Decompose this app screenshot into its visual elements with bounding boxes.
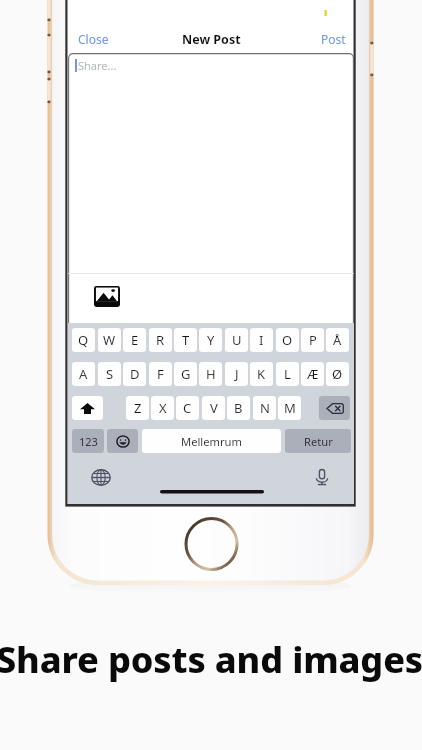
button[interactable]: Mellemrum <box>142 429 281 453</box>
staticText: N <box>260 399 270 417</box>
button[interactable]: R <box>149 328 172 352</box>
staticText: B <box>234 399 243 417</box>
button[interactable]: L <box>276 362 299 386</box>
button[interactable]: J <box>225 362 248 386</box>
staticText: U <box>232 331 242 349</box>
button[interactable]: Dictation <box>313 468 331 486</box>
button[interactable]: D <box>123 362 146 386</box>
button[interactable]: Share... <box>68 53 354 273</box>
button[interactable]: Retur <box>285 429 351 453</box>
button[interactable]: C <box>176 396 199 420</box>
staticText: Å <box>333 331 342 349</box>
button[interactable]: Emoji <box>107 429 138 453</box>
button[interactable]: Close <box>78 31 109 47</box>
staticText: Y <box>207 331 215 349</box>
button[interactable]: U <box>225 328 248 352</box>
staticText: D <box>130 365 140 383</box>
staticText: 123 <box>79 434 98 449</box>
button[interactable]: Switch keyboard <box>91 469 111 486</box>
button[interactable]: S <box>98 362 121 386</box>
staticText: G <box>181 365 191 383</box>
button[interactable]: Æ <box>301 362 324 386</box>
staticText: R <box>156 331 165 349</box>
staticText: Retur <box>304 434 333 449</box>
staticText: P <box>309 331 317 349</box>
button[interactable]: G <box>174 362 197 386</box>
button[interactable]: E <box>123 328 146 352</box>
button[interactable]: X <box>151 396 174 420</box>
button[interactable]: P <box>301 328 324 352</box>
button[interactable]: I <box>250 328 273 352</box>
button[interactable]: Y <box>199 328 222 352</box>
staticText: Q <box>78 331 89 349</box>
button[interactable]: F <box>149 362 172 386</box>
staticText: H <box>206 365 216 383</box>
staticText: O <box>282 331 293 349</box>
button[interactable]: O <box>276 328 299 352</box>
button[interactable]: N <box>253 396 276 420</box>
staticText: Ø <box>332 365 343 383</box>
staticText: K <box>257 365 266 383</box>
staticText: A <box>79 365 88 383</box>
staticText: X <box>159 399 167 417</box>
button[interactable]: Ø <box>326 362 349 386</box>
button[interactable]: Z <box>126 396 149 420</box>
staticText: Æ <box>307 365 319 383</box>
staticText: I <box>259 331 264 349</box>
button[interactable]: Shift <box>72 396 103 420</box>
staticText: C <box>183 399 192 417</box>
button[interactable]: V <box>202 396 225 420</box>
staticText: Mellemrum <box>181 434 242 449</box>
staticText: F <box>157 365 164 383</box>
button[interactable]: Q <box>72 328 95 352</box>
button[interactable]: H <box>199 362 222 386</box>
staticText: Z <box>134 399 142 417</box>
staticText: Close <box>78 31 109 47</box>
staticText: J <box>235 365 239 383</box>
button[interactable]: Backspace <box>319 396 350 420</box>
button[interactable]: Post <box>321 31 346 47</box>
staticText: T <box>182 331 190 349</box>
staticText: S <box>106 365 114 383</box>
button[interactable]: T <box>174 328 197 352</box>
button[interactable]: K <box>250 362 273 386</box>
button[interactable]: W <box>98 328 121 352</box>
staticText: Share... <box>78 58 117 73</box>
staticText: V <box>210 399 218 417</box>
staticText: New Post <box>182 31 241 48</box>
staticText: Post <box>321 31 346 47</box>
button[interactable]: 123 <box>72 429 104 453</box>
button[interactable]: B <box>227 396 250 420</box>
staticText: E <box>131 331 139 349</box>
staticText: L <box>284 365 291 383</box>
button[interactable]: Å <box>326 328 349 352</box>
button[interactable]: A <box>72 362 95 386</box>
staticText: M <box>284 399 296 417</box>
staticText: W <box>103 331 116 349</box>
button[interactable]: Add image <box>94 286 120 307</box>
staticText: Share posts and images. <box>0 635 418 684</box>
button[interactable]: M <box>278 396 301 420</box>
